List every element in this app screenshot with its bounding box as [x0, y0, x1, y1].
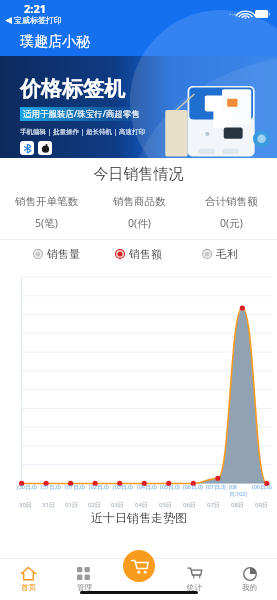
staticText: 31日 — [42, 501, 55, 509]
staticText: (08日,102) — [229, 483, 252, 498]
staticText: 销售额 — [129, 247, 162, 261]
staticText: (05日,0) — [160, 483, 180, 491]
staticText: 04日 — [135, 501, 148, 509]
staticText: ··· — [229, 8, 237, 20]
button[interactable]: 统计 — [167, 558, 222, 600]
staticText: 手机编辑 | 批量操作 | 超长待机 | 高速打印 — [20, 127, 145, 136]
staticText: (30日,0) — [17, 483, 37, 491]
staticText: 30日 — [19, 501, 32, 509]
staticText: 近十日销售走势图 — [91, 510, 187, 525]
staticText: (07日,3) — [206, 483, 226, 491]
button[interactable]: 管理 — [56, 558, 112, 600]
staticText: 02日 — [88, 501, 101, 509]
staticText: 05日 — [159, 501, 172, 509]
staticText: 01日 — [65, 501, 78, 509]
staticText: 03日 — [111, 501, 124, 509]
staticText: (31日,0) — [41, 483, 61, 491]
staticText: 09日 — [255, 501, 268, 509]
staticText: 适用于服装店/珠宝行/商超零售 — [23, 108, 140, 120]
staticText: (01日,0) — [65, 483, 85, 491]
staticText: (04日,0) — [137, 483, 157, 491]
staticText: 0(元) — [220, 216, 243, 230]
staticText: 价格标签机 — [20, 76, 125, 102]
staticText: 销售开单笔数 — [15, 195, 78, 208]
staticText: 管理 — [77, 583, 92, 592]
staticText: 0(件) — [128, 216, 151, 230]
staticText: 我的 — [242, 583, 257, 592]
button[interactable]: 首页 — [0, 558, 56, 600]
staticText: 今日销售情况 — [0, 165, 277, 184]
staticText: 统计 — [187, 583, 202, 592]
staticText: 毛利 — [216, 247, 238, 261]
staticText: 08日 — [231, 501, 244, 509]
button[interactable]: 我的 — [222, 558, 277, 600]
staticText: 璞趣店小秘 — [20, 33, 90, 51]
staticText: (03日,0) — [113, 483, 133, 491]
button[interactable]: 毛利 — [179, 247, 261, 261]
button[interactable]: 销售量 — [16, 247, 97, 261]
button[interactable]: 开单 — [123, 550, 155, 582]
staticText: (09日,0) — [252, 483, 272, 491]
staticText: 首页 — [21, 583, 36, 592]
staticText: 宝威标签打印 — [14, 15, 62, 25]
staticText: 2:21 — [24, 1, 46, 16]
staticText: 销售商品数 — [113, 195, 166, 208]
staticText: 07日 — [207, 501, 220, 509]
staticText: (02日,0) — [89, 483, 109, 491]
staticText: 5(笔) — [35, 216, 58, 230]
staticText: (06日,0) — [183, 483, 203, 491]
staticText: 销售量 — [47, 247, 80, 261]
button[interactable]: 销售额 — [97, 247, 179, 261]
staticText: 合计销售额 — [205, 195, 258, 208]
staticText: 06日 — [183, 501, 196, 509]
